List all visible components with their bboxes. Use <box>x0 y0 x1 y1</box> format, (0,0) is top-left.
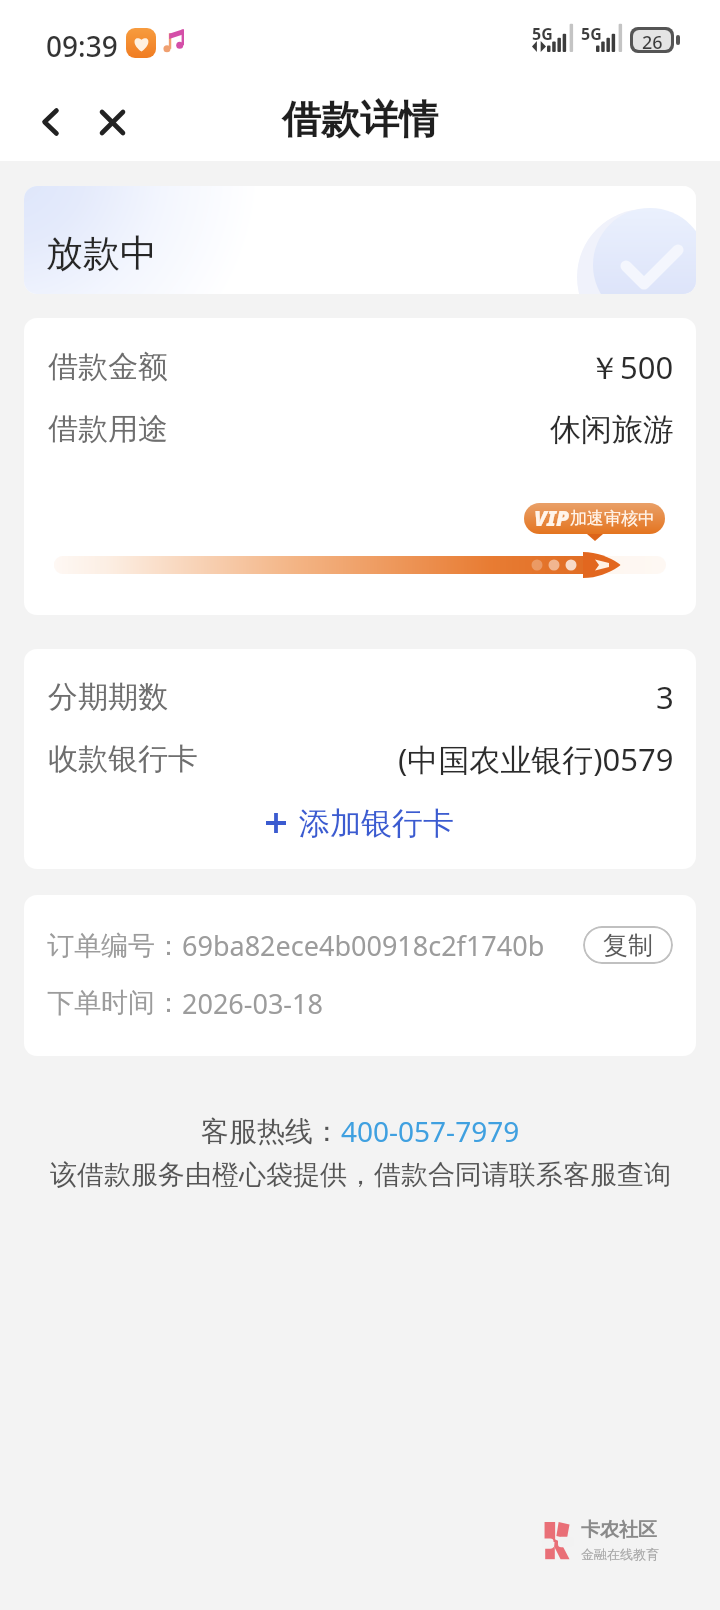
staticText: 金融在线教育 <box>581 1546 659 1562</box>
staticText: 借款用途 <box>48 410 168 448</box>
staticText: 69ba82ece4b00918c2f1740b <box>182 927 545 964</box>
staticText: 客服热线： <box>201 1114 341 1149</box>
staticText: VIP <box>534 504 569 533</box>
staticText: 2026-03-18 <box>182 985 323 1022</box>
staticText: 借款详情 <box>282 95 438 144</box>
staticText: 下单时间： <box>47 986 182 1020</box>
staticText: 休闲旅游 <box>550 410 674 449</box>
staticText: 卡农社区 <box>581 1518 657 1542</box>
button[interactable]: VIP <box>524 503 665 534</box>
staticText: 复制 <box>603 930 653 961</box>
staticText: 分期期数 <box>48 678 168 716</box>
staticText: 收款银行卡 <box>48 740 198 778</box>
staticText: (中国农业银行)0579 <box>398 738 674 780</box>
button[interactable]: 添加银行卡 <box>24 795 696 851</box>
staticText: ￥500 <box>589 346 674 388</box>
staticText: 加速审核中 <box>570 508 655 529</box>
button[interactable]: 400-057-7979 <box>341 1112 520 1150</box>
staticText: 添加银行卡 <box>299 804 454 843</box>
button[interactable]: 放款中 <box>24 186 696 294</box>
staticText: 26 <box>642 30 663 50</box>
staticText: 借款金额 <box>48 348 168 386</box>
staticText: 09:39 <box>46 27 118 65</box>
staticText: 5G <box>532 23 553 45</box>
staticText: 5G <box>581 23 602 45</box>
button[interactable]: 复制 <box>583 926 673 964</box>
button[interactable]: Back <box>26 98 74 146</box>
staticText: 订单编号： <box>47 929 182 963</box>
button[interactable]: Close <box>88 98 136 146</box>
staticText: 放款中 <box>46 230 157 277</box>
staticText: 3 <box>656 676 674 718</box>
staticText: 该借款服务由橙心袋提供，借款合同请联系客服查询 <box>50 1158 671 1192</box>
